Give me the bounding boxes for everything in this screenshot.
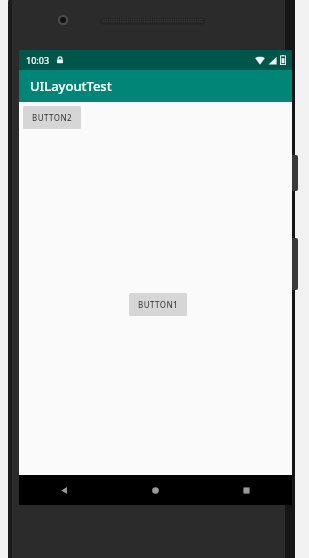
staticText: 10:03 [26, 54, 50, 66]
button[interactable]: BUTTON2 [23, 106, 81, 129]
button[interactable]: Back [19, 475, 110, 505]
button[interactable]: BUTTON1 [129, 293, 187, 316]
button[interactable]: Recent apps [201, 475, 292, 505]
staticText: BUTTON1 [138, 299, 178, 310]
button[interactable]: Home [110, 475, 201, 505]
staticText: UILayoutTest [30, 77, 112, 95]
staticText: BUTTON2 [32, 112, 72, 123]
